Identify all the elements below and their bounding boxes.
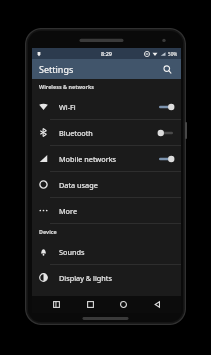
button[interactable]: Bluetooth <box>32 120 181 145</box>
staticText: 8:29 <box>101 50 112 57</box>
button[interactable]: Back <box>147 296 167 313</box>
staticText: Data usage <box>59 180 175 190</box>
button[interactable]: Sounds <box>32 239 181 264</box>
staticText: 50% <box>168 51 178 57</box>
button[interactable]: Recents <box>46 296 66 313</box>
button[interactable]: Display & lights <box>32 265 181 290</box>
button[interactable]: Mobile networks <box>32 146 181 171</box>
button[interactable]: Search <box>160 62 174 76</box>
button[interactable]: Data usage <box>32 172 181 197</box>
staticText: Display & lights <box>59 273 175 283</box>
button[interactable]: Wi-Fi <box>32 94 181 119</box>
button[interactable]: More <box>32 198 181 223</box>
button[interactable]: Bluetooth toggle <box>157 127 175 139</box>
staticText: Sounds <box>59 247 175 257</box>
staticText: Bluetooth <box>59 128 157 138</box>
staticText: Mobile networks <box>59 154 157 164</box>
staticText: Wi-Fi <box>59 102 157 112</box>
staticText: Device <box>39 228 57 235</box>
button[interactable]: Wi-Fi toggle <box>157 101 175 113</box>
staticText: Settings <box>39 63 160 75</box>
button[interactable]: Home <box>113 296 133 313</box>
button[interactable]: Overview <box>80 296 100 313</box>
staticText: Wireless & networks <box>39 83 94 90</box>
staticText: More <box>59 206 175 216</box>
button[interactable]: Mobile networks toggle <box>157 153 175 165</box>
